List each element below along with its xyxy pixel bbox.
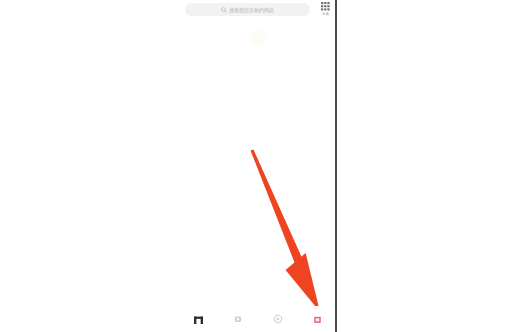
button[interactable]: Profile xyxy=(298,306,337,332)
button[interactable]: Categories xyxy=(316,0,334,18)
staticText: 分类 xyxy=(322,12,329,16)
button[interactable]: 搜索指定名称的商品 xyxy=(185,3,310,16)
button[interactable]: Category xyxy=(218,306,258,332)
button[interactable]: Discover xyxy=(258,306,298,332)
staticText: 搜索指定名称的商品 xyxy=(229,7,274,13)
button[interactable]: Home xyxy=(178,306,218,332)
